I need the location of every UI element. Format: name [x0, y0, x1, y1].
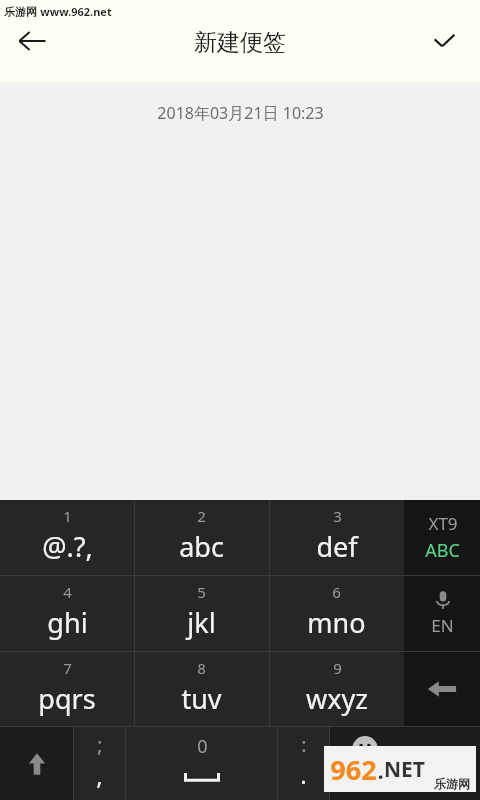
staticText: 1: [63, 506, 72, 526]
staticText: ;: [97, 731, 103, 758]
button[interactable]: Emoji: [330, 727, 480, 800]
staticText: www.962.net: [40, 4, 112, 19]
staticText: wxyz: [306, 680, 368, 717]
staticText: 乐游网: [434, 776, 470, 791]
staticText: 2: [197, 506, 206, 526]
staticText: @.?,: [42, 528, 93, 565]
button[interactable]: 1: [0, 500, 134, 575]
staticText: .: [377, 755, 384, 785]
button[interactable]: 8: [134, 652, 269, 726]
staticText: jkl: [187, 604, 216, 641]
button[interactable]: 2: [134, 500, 269, 575]
staticText: 6: [332, 582, 341, 602]
staticText: ghi: [47, 604, 88, 641]
staticText: XT9: [428, 512, 458, 535]
button[interactable]: Shift: [0, 727, 73, 800]
staticText: mno: [307, 604, 366, 641]
staticText: 4: [63, 582, 72, 602]
button[interactable]: 4: [0, 576, 134, 651]
staticText: 乐游网: [4, 5, 37, 19]
staticText: 新建便签: [194, 28, 286, 57]
button[interactable]: Save: [416, 13, 472, 69]
staticText: 8: [197, 658, 206, 678]
button[interactable]: 5: [134, 576, 269, 651]
staticText: 3: [333, 506, 342, 526]
button[interactable]: :: [278, 727, 329, 800]
staticText: tuv: [181, 680, 222, 717]
staticText: ,: [96, 759, 103, 792]
staticText: 962: [330, 751, 377, 788]
staticText: 5: [197, 582, 206, 602]
button[interactable]: Space: [126, 727, 277, 800]
staticText: abc: [179, 528, 224, 565]
button[interactable]: 6: [269, 576, 404, 651]
staticText: def: [316, 528, 358, 565]
button[interactable]: Backspace: [404, 652, 480, 726]
staticText: 0: [197, 734, 208, 759]
staticText: .: [300, 758, 307, 791]
staticText: NET: [384, 755, 425, 784]
button[interactable]: Voice input: [404, 576, 480, 651]
button[interactable]: 9: [269, 652, 404, 726]
staticText: 2018年03月21日 10:23: [157, 102, 324, 124]
staticText: ABC: [425, 538, 460, 563]
button[interactable]: XT9: [404, 500, 480, 575]
staticText: pqrs: [38, 680, 96, 717]
staticText: :: [301, 731, 307, 758]
button[interactable]: 3: [269, 500, 404, 575]
staticText: 9: [333, 658, 342, 678]
button[interactable]: Back: [4, 13, 60, 69]
button[interactable]: 7: [0, 652, 134, 726]
staticText: 7: [63, 658, 72, 678]
button[interactable]: ;: [74, 727, 125, 800]
staticText: EN: [431, 614, 454, 637]
